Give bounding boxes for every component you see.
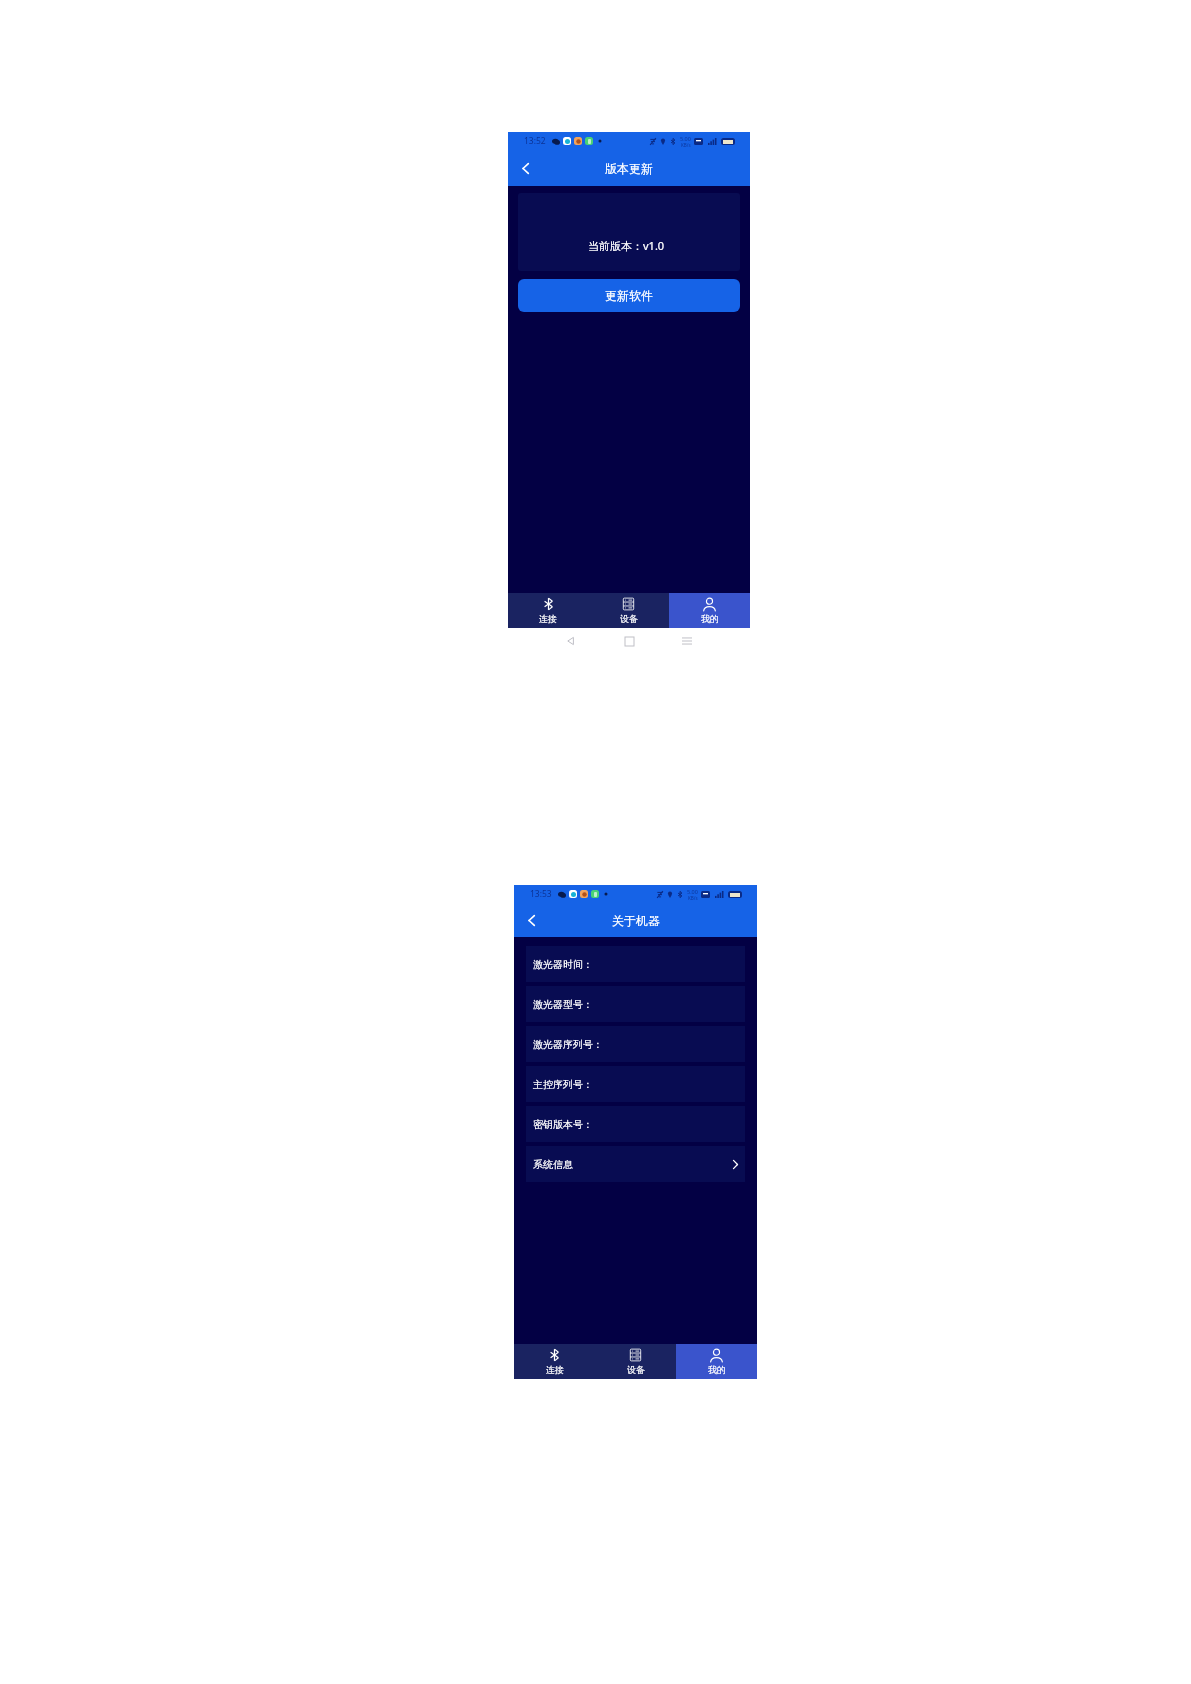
staticText: KB/s <box>688 895 698 901</box>
staticText: 关于机器 <box>612 913 660 928</box>
staticText: 我的 <box>701 613 719 624</box>
staticText: 激光器时间： <box>533 958 593 971</box>
button[interactable]: 我的 <box>669 593 750 628</box>
button[interactable]: 连接 <box>508 593 588 628</box>
button[interactable]: 我的 <box>676 1344 757 1379</box>
button[interactable]: Back <box>514 903 548 937</box>
staticText: 13:53 <box>530 888 552 900</box>
button[interactable]: 设备 <box>595 1344 676 1379</box>
button[interactable]: Recents <box>658 631 716 651</box>
button[interactable]: Back <box>508 150 542 186</box>
staticText: 连接 <box>539 613 557 624</box>
button[interactable]: 密钥版本号： <box>526 1106 745 1142</box>
staticText: KB/s <box>681 142 691 148</box>
button[interactable]: 激光器时间： <box>526 946 745 982</box>
button[interactable]: 系统信息 <box>526 1146 745 1182</box>
staticText: 激光器型号： <box>533 998 593 1011</box>
staticText: 5.00 <box>687 888 698 895</box>
button[interactable]: 激光器型号： <box>526 986 745 1022</box>
button[interactable]: 更新软件 <box>518 279 740 312</box>
button[interactable]: Back <box>542 631 600 651</box>
button[interactable]: Home <box>600 631 658 651</box>
staticText: 设备 <box>627 1364 645 1375</box>
button[interactable]: 当前版本：v1.0 <box>518 193 740 271</box>
button[interactable]: 设备 <box>588 593 669 628</box>
staticText: 系统信息 <box>533 1158 573 1171</box>
staticText: 更新软件 <box>605 288 653 303</box>
staticText: 当前版本：v1.0 <box>588 238 665 253</box>
button[interactable]: 激光器序列号： <box>526 1026 745 1062</box>
button[interactable]: 连接 <box>514 1344 595 1379</box>
staticText: 主控序列号： <box>533 1078 593 1091</box>
staticText: 密钥版本号： <box>533 1118 593 1131</box>
staticText: 激光器序列号： <box>533 1038 603 1051</box>
staticText: 设备 <box>620 613 638 624</box>
staticText: 连接 <box>546 1364 564 1375</box>
staticText: 5.00 <box>680 135 691 142</box>
staticText: 我的 <box>708 1364 726 1375</box>
button[interactable]: 主控序列号： <box>526 1066 745 1102</box>
staticText: 版本更新 <box>605 161 653 176</box>
staticText: 13:52 <box>524 135 546 147</box>
